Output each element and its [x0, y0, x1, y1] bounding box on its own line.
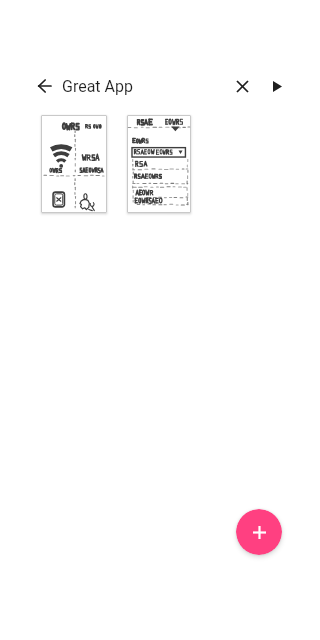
button[interactable]: Add [236, 509, 282, 555]
button[interactable]: Play [260, 69, 294, 103]
button[interactable]: Close [225, 69, 259, 103]
button[interactable]: Wi-Fi setup wireframe [41, 115, 107, 213]
button[interactable]: Contacts wireframe [127, 115, 191, 213]
button[interactable]: Great App [62, 77, 133, 96]
button[interactable]: Back [26, 68, 62, 104]
